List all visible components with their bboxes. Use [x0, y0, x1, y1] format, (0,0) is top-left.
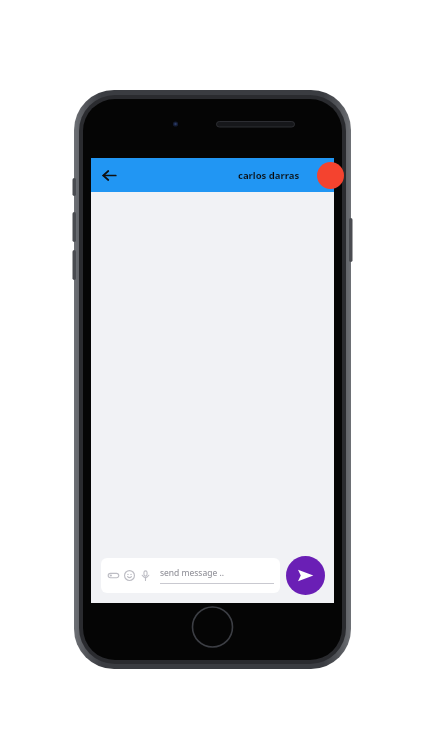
- button[interactable]: Back: [96, 162, 122, 188]
- staticText: send message ..: [160, 567, 224, 579]
- staticText: carlos darras: [238, 169, 300, 182]
- button[interactable]: Profile photo: [317, 162, 344, 189]
- button[interactable]: carlos darras: [238, 158, 334, 192]
- button[interactable]: send message ..: [101, 558, 280, 593]
- button[interactable]: Send: [286, 556, 325, 595]
